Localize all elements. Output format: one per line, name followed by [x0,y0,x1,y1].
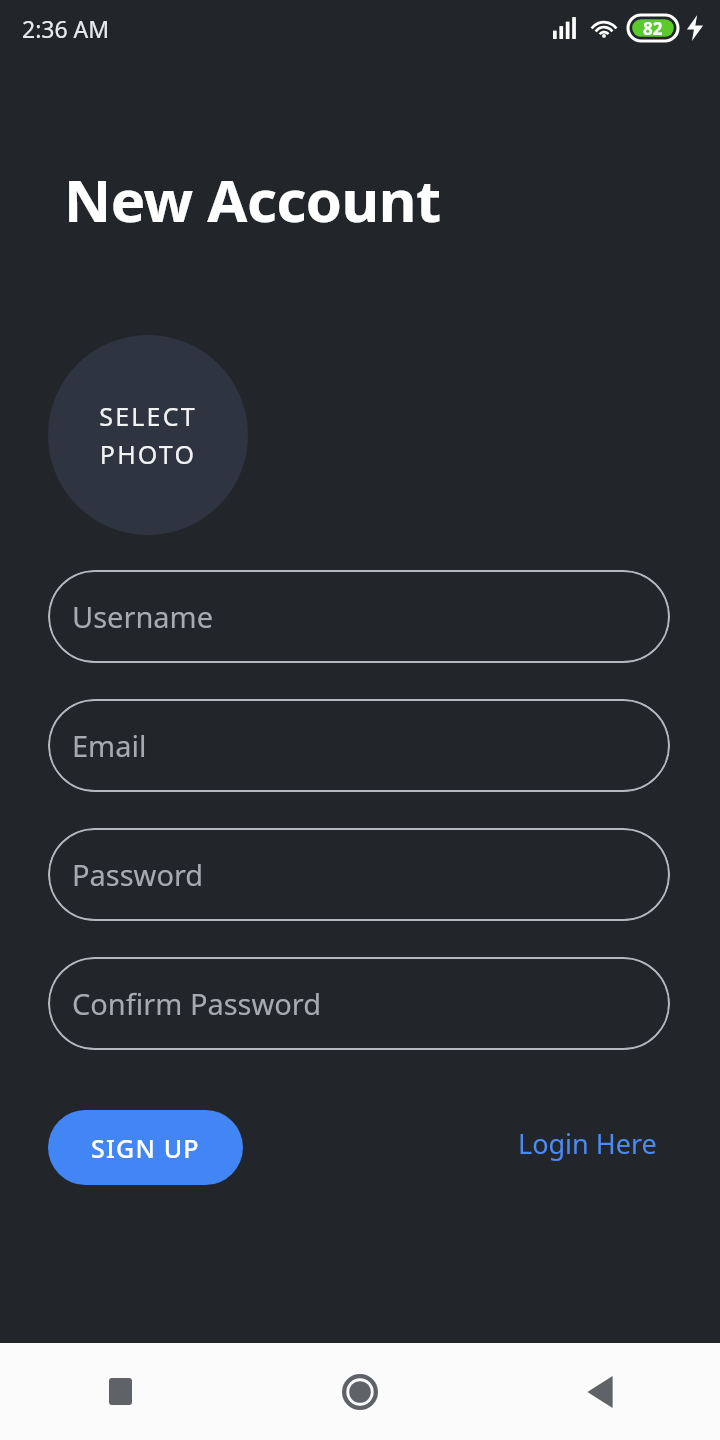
staticText: Password [72,855,204,894]
staticText: SIGN UP [91,1131,200,1165]
button[interactable]: SIGN UP [48,1110,243,1185]
staticText: 2:36 AM [22,13,110,44]
button[interactable]: Username [48,570,670,663]
button[interactable]: Login Here [500,1112,675,1174]
button[interactable]: Confirm Password [48,957,670,1050]
button[interactable]: SELECT PHOTO [48,335,248,535]
staticText: Login Here [518,1125,657,1162]
button[interactable]: Home [240,1343,480,1440]
button[interactable]: Back [480,1343,720,1440]
staticText: SELECT PHOTO [99,399,197,471]
staticText: Confirm Password [72,984,322,1023]
staticText: Username [72,597,214,636]
staticText: New Account [64,160,441,239]
button[interactable]: Email [48,699,670,792]
button[interactable]: Password [48,828,670,921]
button[interactable]: Recent apps [0,1343,240,1440]
staticText: 82 [643,17,663,40]
staticText: Email [72,726,147,765]
